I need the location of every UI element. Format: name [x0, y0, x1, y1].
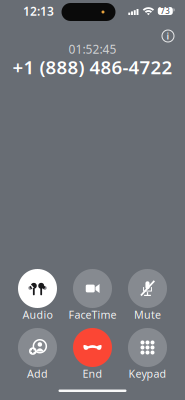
button[interactable]: Mute	[120, 269, 175, 321]
staticText: Keypad	[128, 366, 166, 381]
staticText: +1 (888) 486-4722	[12, 55, 172, 79]
button[interactable]: Call info	[158, 26, 178, 46]
staticText: Mute	[134, 307, 161, 322]
staticText: i	[166, 30, 169, 42]
staticText: 01:52:45	[68, 41, 116, 57]
button[interactable]: End	[65, 328, 120, 380]
button[interactable]: FaceTime	[65, 269, 120, 321]
button[interactable]: Audio	[10, 269, 65, 321]
button[interactable]: Keypad	[120, 328, 175, 380]
staticText: Audio	[22, 307, 52, 322]
staticText: Add	[27, 366, 48, 381]
staticText: End	[82, 366, 102, 381]
staticText: 73	[160, 6, 170, 16]
button[interactable]: Add	[10, 328, 65, 380]
staticText: 12:13	[23, 3, 54, 19]
staticText: FaceTime	[68, 307, 116, 322]
